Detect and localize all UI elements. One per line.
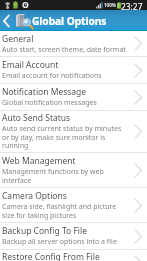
staticText: Email account for notifications (2, 71, 102, 81)
staticText: Auto send current status by minutes or b… (2, 124, 126, 150)
button[interactable]: Auto Send Status (0, 110, 147, 153)
staticText: Camera side, flashlight and picture size… (2, 202, 126, 220)
staticText: General (2, 33, 34, 45)
button[interactable]: Web Management (0, 153, 147, 188)
staticText: 100% (104, 2, 116, 8)
button[interactable]: Camera Options (0, 188, 147, 223)
staticText: Notification Message (2, 86, 87, 98)
staticText: Backup all server options into a file (2, 237, 117, 247)
staticText: Auto Send Status (2, 112, 71, 124)
button[interactable]: Backup Config To File (0, 223, 147, 250)
button[interactable]: Notification Message (0, 84, 147, 111)
button[interactable]: Restore Config From File (0, 249, 147, 261)
staticText: Web Management (2, 155, 76, 167)
staticText: Email Account (2, 59, 59, 71)
button[interactable]: Back (0, 10, 13, 31)
staticText: Backup Config To File (2, 225, 88, 237)
staticText: Management functions by web interface (2, 167, 126, 185)
staticText: Global notification messages (2, 98, 97, 108)
staticText: Camera Options (2, 190, 67, 202)
button[interactable]: Email Account (0, 57, 147, 84)
staticText: Global Options (32, 14, 107, 28)
staticText: 23:27 (121, 1, 143, 11)
staticText: Auto start, screen theme, date format (2, 45, 126, 55)
staticText: Restore Config From File (2, 251, 100, 261)
button[interactable]: General (0, 31, 147, 57)
